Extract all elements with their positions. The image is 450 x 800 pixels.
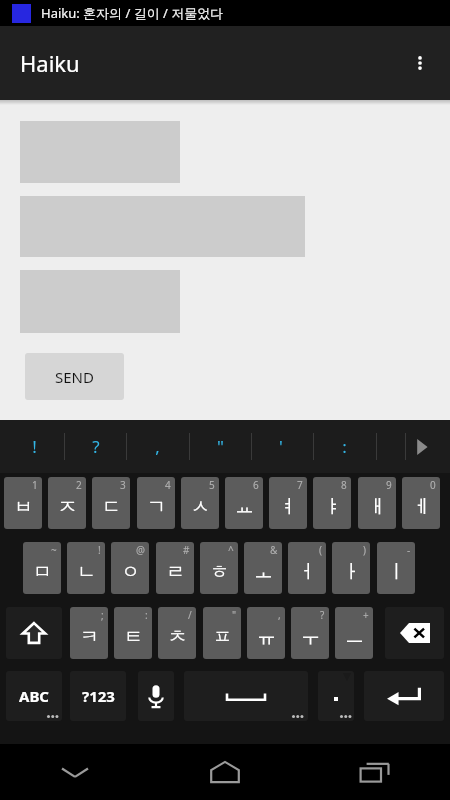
staticText: 6 xyxy=(253,478,259,492)
button[interactable]: ~ xyxy=(23,542,61,594)
button[interactable]: ! xyxy=(67,542,105,594)
button[interactable]: 6 xyxy=(225,477,263,529)
button[interactable]: / xyxy=(158,607,196,659)
staticText: ㅡ xyxy=(345,625,364,649)
staticText: - xyxy=(407,543,411,557)
button[interactable]: ABC xyxy=(6,671,62,721)
button[interactable]: SEND xyxy=(25,353,124,400)
button[interactable]: Backspace xyxy=(385,607,444,659)
button[interactable]: : xyxy=(322,420,366,473)
button[interactable]: 4 xyxy=(137,477,175,529)
staticText: ㅕ xyxy=(279,495,298,519)
staticText: @ xyxy=(136,543,145,557)
button[interactable]: 7 xyxy=(269,477,307,529)
staticText: / xyxy=(188,608,192,622)
button[interactable]: ' xyxy=(259,420,303,473)
staticText: ㅑ xyxy=(323,495,342,519)
staticText: ㅅ xyxy=(191,495,210,519)
button[interactable]: More options xyxy=(398,41,442,85)
button[interactable]: Hide keyboard xyxy=(0,744,150,800)
staticText: ㅎ xyxy=(210,560,229,584)
button[interactable]: ? xyxy=(74,420,118,473)
staticText: Haiku: 혼자의 / 길이 / 저물었다 xyxy=(41,4,224,22)
button[interactable]: 1 xyxy=(4,477,42,529)
button[interactable]: Space xyxy=(184,671,308,721)
button[interactable]: @ xyxy=(111,542,149,594)
button[interactable]: 8 xyxy=(313,477,351,529)
button[interactable]: More suggestions xyxy=(402,427,442,467)
staticText: ㅏ xyxy=(342,560,361,584)
button[interactable]: Shift xyxy=(6,607,62,659)
staticText: ? xyxy=(320,608,325,622)
staticText: Haiku xyxy=(20,48,80,78)
button[interactable]: Recent apps xyxy=(300,744,450,800)
button[interactable] xyxy=(318,671,354,721)
button[interactable]: " xyxy=(198,420,242,473)
staticText: ㅍ xyxy=(213,625,232,649)
button[interactable]: 0 xyxy=(402,477,440,529)
staticText: 2 xyxy=(76,478,82,492)
button[interactable]: Voice input xyxy=(138,671,174,721)
staticText: ㅋ xyxy=(80,625,99,649)
button[interactable]: + xyxy=(335,607,373,659)
button[interactable]: ( xyxy=(288,542,326,594)
staticText: : xyxy=(342,435,347,458)
staticText: ?123 xyxy=(82,686,115,706)
staticText: & xyxy=(270,543,278,557)
button[interactable]: ! xyxy=(12,420,56,473)
staticText: ' xyxy=(279,435,283,458)
staticText: ( xyxy=(319,543,322,557)
button[interactable]: , xyxy=(135,420,179,473)
button[interactable]: Enter xyxy=(364,671,444,721)
staticText: : xyxy=(145,608,148,622)
staticText: ~ xyxy=(51,543,57,557)
staticText: 3 xyxy=(120,478,126,492)
button[interactable]: # xyxy=(156,542,194,594)
staticText: ㅗ xyxy=(254,560,273,584)
staticText: ㅠ xyxy=(257,625,276,649)
button[interactable]: ^ xyxy=(200,542,238,594)
staticText: ㅐ xyxy=(368,495,387,519)
button[interactable]: ) xyxy=(332,542,370,594)
staticText: ㅁ xyxy=(33,560,52,584)
button[interactable]: , xyxy=(247,607,285,659)
staticText: ㄴ xyxy=(77,560,96,584)
staticText: ; xyxy=(101,608,104,622)
staticText: ) xyxy=(363,543,366,557)
staticText: ㅊ xyxy=(168,625,187,649)
staticText: " xyxy=(232,608,237,622)
button[interactable]: & xyxy=(244,542,282,594)
button[interactable]: 9 xyxy=(358,477,396,529)
button[interactable]: 3 xyxy=(92,477,130,529)
staticText: ㅜ xyxy=(301,625,320,649)
button[interactable]: ? xyxy=(291,607,329,659)
button[interactable]: 2 xyxy=(48,477,86,529)
staticText: ㄷ xyxy=(102,495,121,519)
staticText: ㅓ xyxy=(298,560,317,584)
button[interactable]: ?123 xyxy=(70,671,126,721)
staticText: , xyxy=(278,608,281,622)
staticText: ^ xyxy=(228,543,234,557)
staticText: ㅣ xyxy=(387,560,406,584)
button[interactable]: - xyxy=(377,542,415,594)
staticText: ! xyxy=(32,435,37,458)
staticText: + xyxy=(363,608,369,622)
staticText: ? xyxy=(92,435,100,458)
staticText: 9 xyxy=(386,478,392,492)
staticText: 5 xyxy=(209,478,215,492)
staticText: 0 xyxy=(430,478,436,492)
staticText: 1 xyxy=(32,478,38,492)
staticText: , xyxy=(155,435,160,458)
button[interactable]: : xyxy=(114,607,152,659)
button[interactable]: ; xyxy=(70,607,108,659)
button[interactable]: Home xyxy=(150,744,300,800)
button[interactable]: " xyxy=(203,607,241,659)
staticText: # xyxy=(183,543,190,557)
staticText: ㅔ xyxy=(412,495,431,519)
staticText: ㅂ xyxy=(14,495,33,519)
staticText: ㄱ xyxy=(147,495,166,519)
button[interactable]: 5 xyxy=(181,477,219,529)
